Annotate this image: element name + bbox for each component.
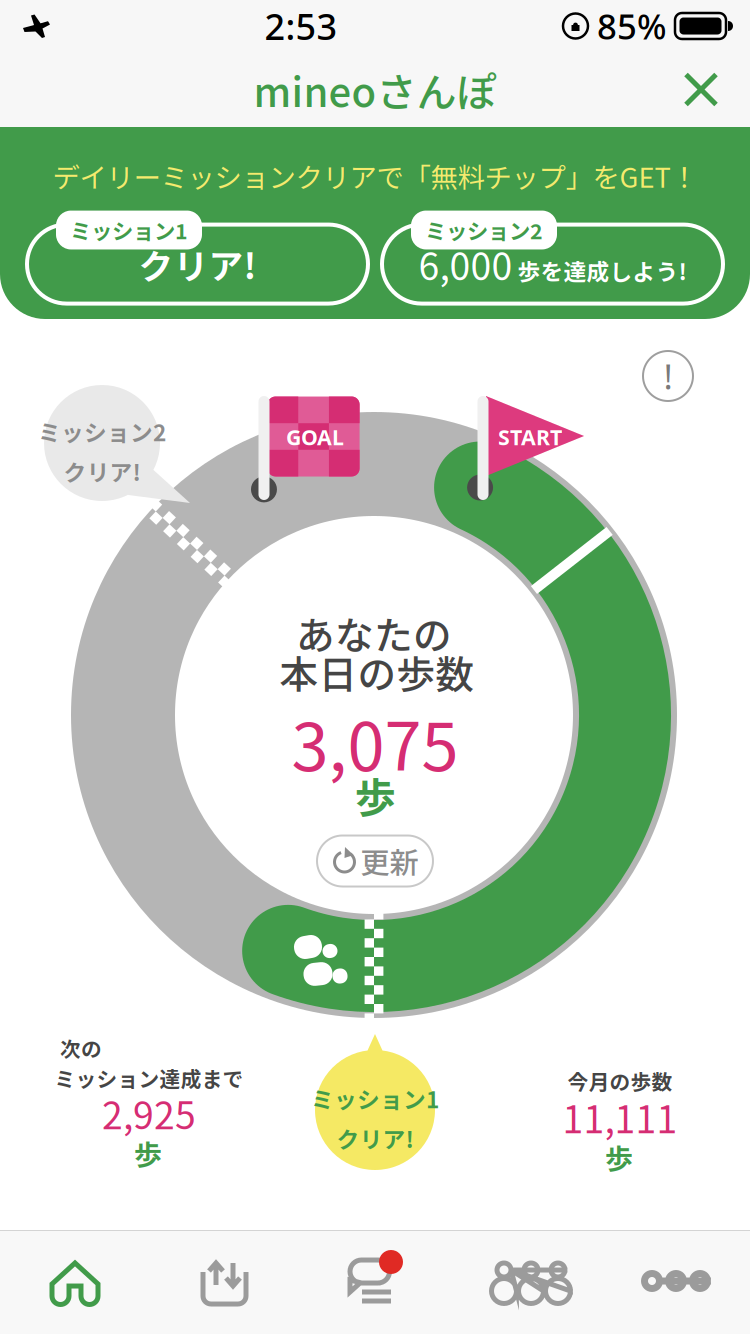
staticText: START — [498, 423, 562, 451]
button[interactable]: Home — [0, 1230, 150, 1334]
staticText: ミッション2 — [38, 415, 166, 448]
staticText: 本日の歩数 — [279, 644, 474, 700]
staticText: デイリーミッションクリアで「無料チップ」をGET！ — [52, 156, 697, 196]
staticText: 6,000 — [418, 237, 512, 291]
staticText: 次の — [60, 1033, 102, 1063]
button[interactable]: Data — [150, 1230, 300, 1334]
staticText: 歩 — [134, 1133, 162, 1173]
staticText: ! — [663, 353, 672, 399]
staticText: ミッション2 — [425, 215, 543, 245]
button[interactable]: Information — [637, 345, 699, 407]
staticText: 今月の歩数 — [567, 1066, 672, 1096]
staticText: 歩 — [354, 765, 395, 825]
staticText: 85% — [597, 3, 667, 49]
staticText: クリア! — [336, 1122, 413, 1155]
button[interactable]: Members — [450, 1230, 600, 1334]
staticText: 更新 — [360, 840, 418, 882]
staticText: クリア! — [63, 455, 140, 488]
staticText: 歩を達成しよう! — [517, 254, 686, 287]
staticText: GOAL — [286, 423, 344, 451]
staticText: 2,925 — [102, 1086, 196, 1140]
button[interactable]: 更新 — [317, 835, 433, 886]
button[interactable]: More — [600, 1230, 750, 1334]
staticText: 歩 — [605, 1137, 633, 1177]
button[interactable]: Chat — [300, 1230, 450, 1334]
staticText: mineoさんぽ — [253, 60, 496, 118]
staticText: クリア! — [138, 239, 256, 289]
staticText: ミッション1 — [70, 215, 188, 245]
staticText: 11,111 — [562, 1090, 677, 1144]
staticText: 3,075 — [291, 694, 458, 790]
staticText: ミッション達成まで — [54, 1063, 243, 1093]
button[interactable]: Close — [666, 54, 736, 124]
staticText: あなたの — [296, 605, 452, 661]
staticText: 2:53 — [264, 2, 337, 50]
staticText: ミッション1 — [311, 1082, 439, 1115]
